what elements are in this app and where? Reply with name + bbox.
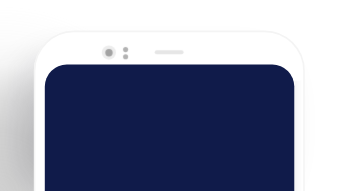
- button[interactable]: Phone display: [45, 65, 294, 191]
